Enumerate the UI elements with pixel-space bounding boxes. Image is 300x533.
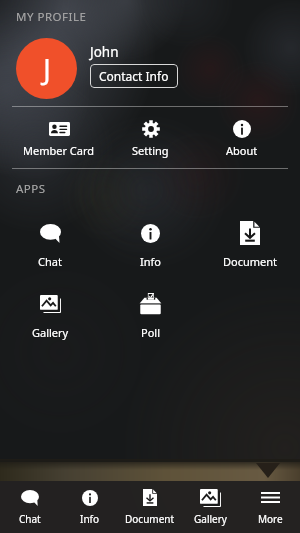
staticText: Document: [223, 254, 278, 269]
button[interactable]: Chat: [0, 221, 100, 269]
staticText: Setting: [132, 143, 169, 158]
staticText: Chat: [38, 254, 62, 269]
button[interactable]: Info: [60, 481, 120, 533]
button[interactable]: Poll: [100, 292, 200, 340]
staticText: About: [226, 143, 258, 158]
staticText: Member Card: [23, 143, 95, 158]
staticText: Gallery: [32, 325, 69, 340]
button[interactable]: J: [16, 38, 77, 99]
button[interactable]: Member Card: [13, 107, 105, 168]
staticText: J: [43, 49, 51, 88]
staticText: Chat: [19, 512, 41, 526]
button[interactable]: Contact Info: [90, 64, 178, 88]
staticText: More: [258, 512, 283, 526]
button[interactable]: Gallery: [180, 481, 240, 533]
button[interactable]: Document: [120, 481, 180, 533]
staticText: MY PROFILE: [16, 9, 87, 25]
button[interactable]: Chat: [0, 481, 60, 533]
staticText: Poll: [141, 325, 160, 340]
button[interactable]: Document: [200, 221, 300, 269]
button[interactable]: More: [240, 481, 300, 533]
staticText: Info: [140, 254, 161, 269]
button[interactable]: Gallery: [0, 292, 100, 340]
staticText: Contact Info: [99, 68, 169, 84]
staticText: Info: [80, 512, 100, 526]
staticText: John: [90, 43, 119, 61]
staticText: Document: [125, 512, 175, 526]
button[interactable]: Info: [100, 221, 200, 269]
staticText: Gallery: [194, 512, 227, 526]
staticText: APPS: [16, 181, 46, 197]
button[interactable]: About: [196, 107, 287, 168]
button[interactable]: Setting: [105, 107, 196, 168]
